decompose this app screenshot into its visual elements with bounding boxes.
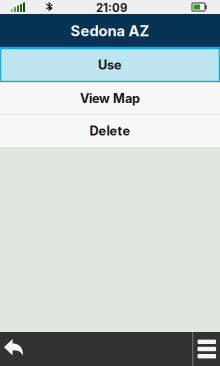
staticText: View Map: [80, 91, 140, 106]
staticText: Delete: [89, 123, 130, 139]
button[interactable]: Back: [0, 332, 34, 366]
button[interactable]: Use: [0, 48, 220, 82]
staticText: 21:09: [96, 1, 127, 15]
button[interactable]: View Map: [0, 83, 220, 114]
button[interactable]: Menu: [194, 332, 220, 366]
button[interactable]: Delete: [0, 115, 220, 147]
staticText: Use: [98, 57, 122, 73]
staticText: Sedona AZ: [70, 22, 149, 40]
